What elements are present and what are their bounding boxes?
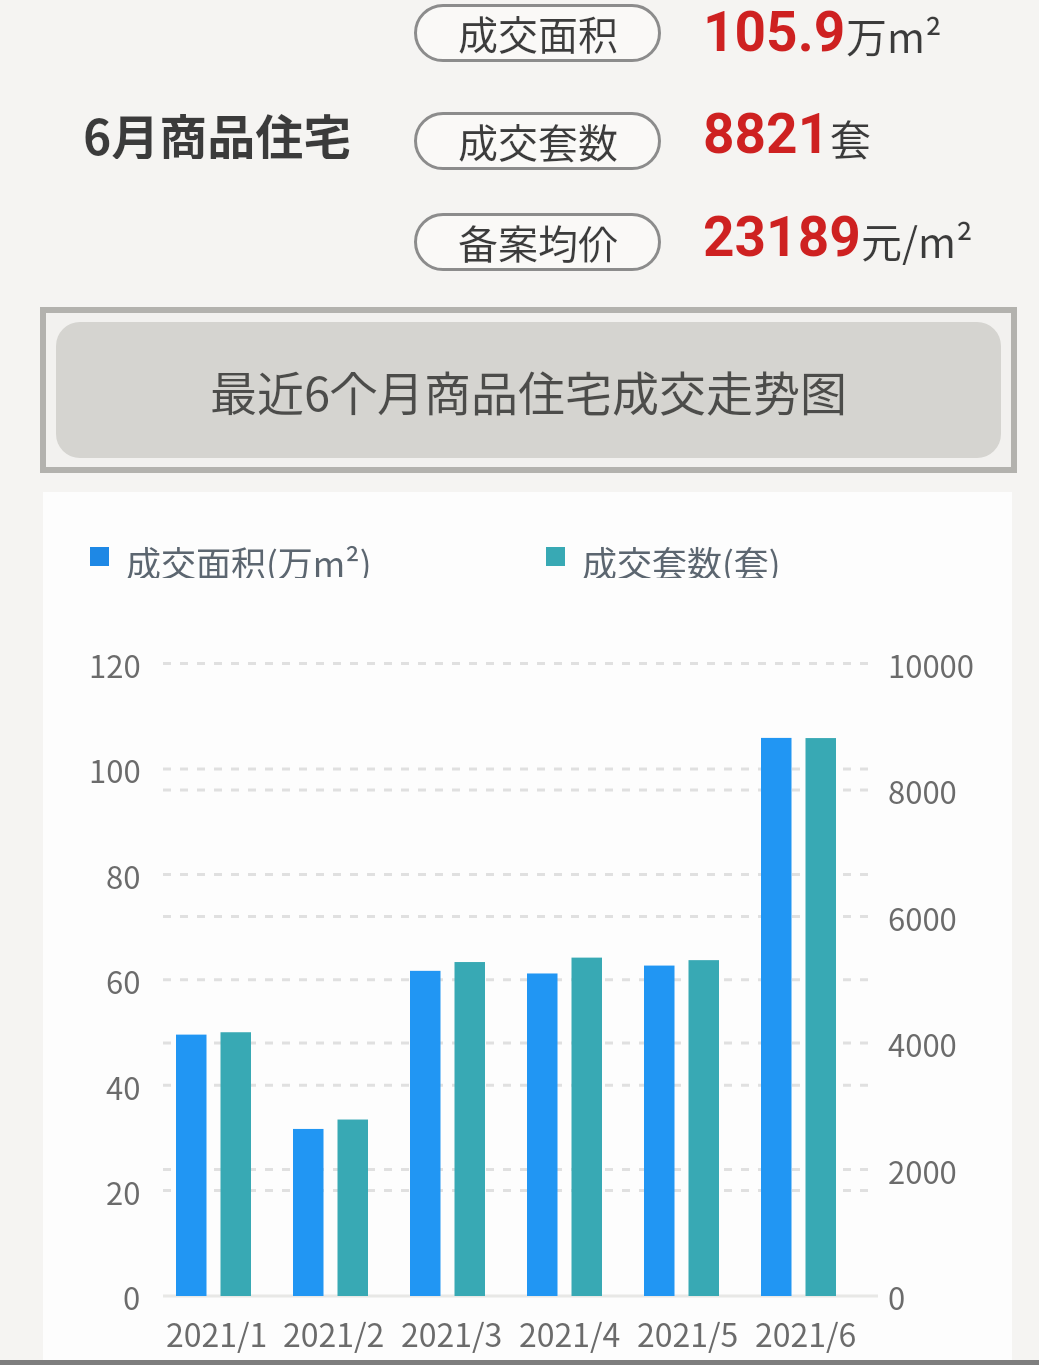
staticText: 套	[830, 107, 871, 166]
staticText: 23189	[703, 205, 861, 269]
button[interactable]: 最近6个月商品住宅成交走势图	[56, 322, 1001, 458]
staticText: 2021/4	[519, 1310, 621, 1354]
staticText: 2021/2	[283, 1310, 385, 1354]
staticText: 8821	[703, 102, 830, 166]
staticText: 成交套数	[458, 112, 618, 170]
staticText: 105.9	[703, 0, 846, 64]
staticText: 40	[106, 1064, 141, 1108]
button[interactable]: 成交面积	[414, 4, 661, 62]
staticText: 100	[89, 747, 141, 791]
staticText: 成交面积	[458, 4, 618, 62]
staticText: 元/m²	[861, 210, 973, 269]
staticText: 10000	[888, 642, 975, 686]
staticText: 60	[106, 958, 141, 1002]
staticText: 2021/5	[637, 1310, 739, 1354]
button[interactable]: 备案均价	[414, 213, 661, 271]
staticText: 0	[123, 1274, 141, 1318]
staticText: 备案均价	[458, 213, 618, 271]
staticText: 成交面积(万m²)	[126, 536, 372, 578]
staticText: 2021/3	[401, 1310, 503, 1354]
staticText: 120	[89, 642, 141, 686]
staticText: 6000	[888, 895, 957, 939]
staticText: 80	[106, 853, 141, 897]
staticText: 成交套数(套)	[582, 536, 781, 578]
staticText: 6月商品住宅	[83, 99, 352, 159]
staticText: 万m²	[846, 5, 942, 64]
staticText: 0	[888, 1274, 906, 1318]
staticText: 4000	[888, 1021, 957, 1065]
staticText: 最近6个月商品住宅成交走势图	[210, 356, 848, 424]
staticText: 2021/6	[755, 1310, 857, 1354]
staticText: 2000	[888, 1148, 957, 1192]
staticText: 2021/1	[166, 1310, 268, 1354]
staticText: 20	[106, 1169, 141, 1213]
button[interactable]: 成交套数	[414, 112, 661, 170]
staticText: 8000	[888, 768, 957, 812]
